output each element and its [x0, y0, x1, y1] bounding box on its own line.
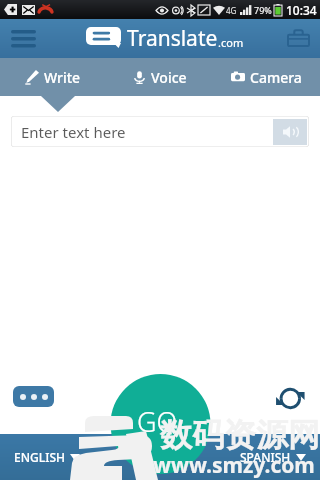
staticText: 10:34 [286, 2, 317, 18]
button[interactable]: SPANISH [236, 445, 310, 469]
button[interactable]: Write [0, 58, 106, 96]
button[interactable]: Camera [213, 58, 320, 96]
staticText: www.smzy.com [153, 451, 315, 480]
button[interactable]: Voice [106, 58, 213, 96]
staticText: ENGLISH [14, 449, 65, 465]
button[interactable]: Swap languages [274, 386, 308, 411]
button[interactable]: Enter text here [11, 116, 309, 147]
staticText: 数码资源网 [160, 415, 320, 455]
staticText: Camera [250, 68, 302, 87]
staticText: SPANISH [240, 449, 291, 465]
staticText: Enter text here [21, 122, 126, 142]
staticText: .com [218, 35, 244, 50]
button[interactable]: Professional translation [276, 19, 320, 58]
staticText: GO [137, 403, 178, 440]
staticText: Write [44, 68, 81, 87]
staticText: Translate [127, 24, 218, 53]
staticText: 79% [254, 4, 272, 16]
button[interactable]: More options [13, 386, 54, 407]
button[interactable]: ENGLISH [10, 445, 84, 469]
button[interactable]: GO translate [110, 374, 210, 474]
button[interactable]: Listen [273, 119, 307, 145]
staticText: Voice [151, 68, 187, 87]
button[interactable]: Menu [0, 19, 46, 58]
staticText: 4G [226, 5, 237, 16]
